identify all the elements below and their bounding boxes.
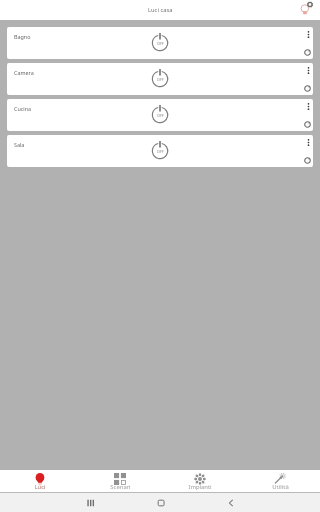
staticText: Luci [34, 483, 46, 491]
button[interactable]: Bagno [7, 27, 313, 59]
staticText: OFF [157, 113, 164, 118]
staticText: Impianti [188, 483, 212, 491]
button[interactable]: Sala [7, 135, 313, 167]
staticText: OFF [157, 149, 164, 154]
staticText: OFF [157, 41, 164, 46]
staticText: Camera [14, 69, 34, 76]
button[interactable]: Altre opzioni [307, 103, 310, 110]
staticText: Luci casa [148, 6, 173, 14]
staticText: Bagno [14, 33, 31, 40]
button[interactable]: Interruttore Sala [148, 139, 172, 163]
button[interactable]: Altre opzioni [307, 139, 310, 146]
staticText: Sala [14, 141, 25, 148]
button[interactable]: Timer [304, 121, 311, 128]
button[interactable]: Impianti [160, 470, 240, 492]
button[interactable]: Panoramica [83, 496, 97, 510]
button[interactable]: Altre opzioni [307, 31, 310, 38]
button[interactable]: Utilità [240, 470, 320, 492]
button[interactable]: Altre opzioni [307, 67, 310, 74]
button[interactable]: Interruttore Bagno [148, 31, 172, 55]
button[interactable]: Camera [7, 63, 313, 95]
staticText: Scenari [110, 483, 131, 491]
button[interactable]: Indietro [224, 496, 238, 510]
button[interactable]: Timer [304, 85, 311, 92]
staticText: Cucina [14, 105, 32, 112]
button[interactable]: Interruttore Camera [148, 67, 172, 91]
button[interactable]: Interruttore Cucina [148, 103, 172, 127]
button[interactable]: Luci [0, 470, 80, 492]
staticText: OFF [157, 77, 164, 82]
button[interactable]: Impostazioni luci [299, 0, 315, 16]
staticText: Utilità [272, 483, 289, 491]
button[interactable]: Home [154, 496, 168, 510]
button[interactable]: Timer [304, 157, 311, 164]
button[interactable]: Timer [304, 49, 311, 56]
button[interactable]: Cucina [7, 99, 313, 131]
button[interactable]: Scenari [80, 470, 160, 492]
